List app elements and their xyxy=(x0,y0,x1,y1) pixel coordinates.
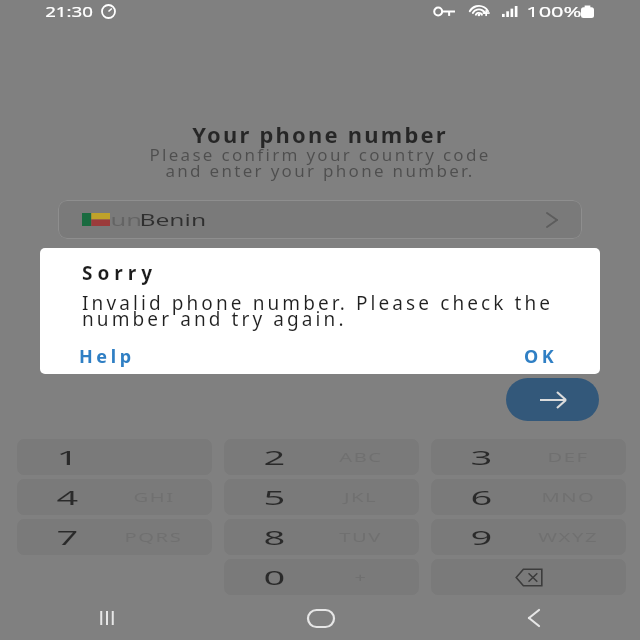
button[interactable]: un xyxy=(58,200,582,239)
staticText: 7 xyxy=(57,524,79,551)
button[interactable]: 1 xyxy=(17,439,212,475)
staticText: DEF xyxy=(548,448,589,466)
button[interactable]: 4 xyxy=(17,479,212,515)
staticText: 100% xyxy=(526,1,583,21)
staticText: WXYZ xyxy=(538,528,599,546)
staticText: 8 xyxy=(264,524,286,551)
staticText: 0 xyxy=(264,564,286,591)
staticText: 3 xyxy=(471,444,493,471)
button[interactable]: Back xyxy=(427,596,640,640)
staticText: Invalid phone number. Please check the xyxy=(82,290,554,316)
staticText: 6 xyxy=(471,484,493,511)
button[interactable]: 2 xyxy=(224,439,419,475)
staticText: 9 xyxy=(471,524,493,551)
staticText: Benin xyxy=(139,208,207,231)
staticText: 4 xyxy=(57,484,79,511)
button[interactable]: OK xyxy=(512,337,570,374)
button[interactable]: 7 xyxy=(17,519,212,555)
staticText: PQRS xyxy=(125,528,183,546)
button[interactable]: 9 xyxy=(431,519,626,555)
button[interactable]: Backspace xyxy=(431,559,626,595)
staticText: Sorry xyxy=(82,260,158,286)
staticText: OK xyxy=(524,344,558,367)
staticText: JKL xyxy=(344,488,378,506)
staticText: MNO xyxy=(541,488,596,506)
staticText: 2 xyxy=(264,444,286,471)
staticText: Your phone number xyxy=(192,119,448,149)
staticText: un xyxy=(110,208,143,231)
staticText: and enter your phone number. xyxy=(165,159,475,182)
staticText: Help xyxy=(79,344,135,367)
button[interactable]: 0 xyxy=(224,559,419,595)
button[interactable]: Help xyxy=(67,337,147,374)
button[interactable]: 6 xyxy=(431,479,626,515)
staticText: ABC xyxy=(339,448,383,466)
staticText: Please confirm your country code xyxy=(149,143,491,166)
staticText: GHI xyxy=(134,488,175,506)
staticText: 1 xyxy=(57,444,79,471)
staticText: 5 xyxy=(264,484,286,511)
button[interactable]: Recent apps xyxy=(0,596,214,640)
staticText: number and try again. xyxy=(82,306,347,332)
button[interactable]: 8 xyxy=(224,519,419,555)
button[interactable]: Home xyxy=(214,596,427,640)
staticText: 21:30 xyxy=(45,1,94,21)
button[interactable]: 5 xyxy=(224,479,419,515)
staticText: TUV xyxy=(339,528,383,546)
button[interactable]: 3 xyxy=(431,439,626,475)
button[interactable]: Next xyxy=(506,378,599,421)
